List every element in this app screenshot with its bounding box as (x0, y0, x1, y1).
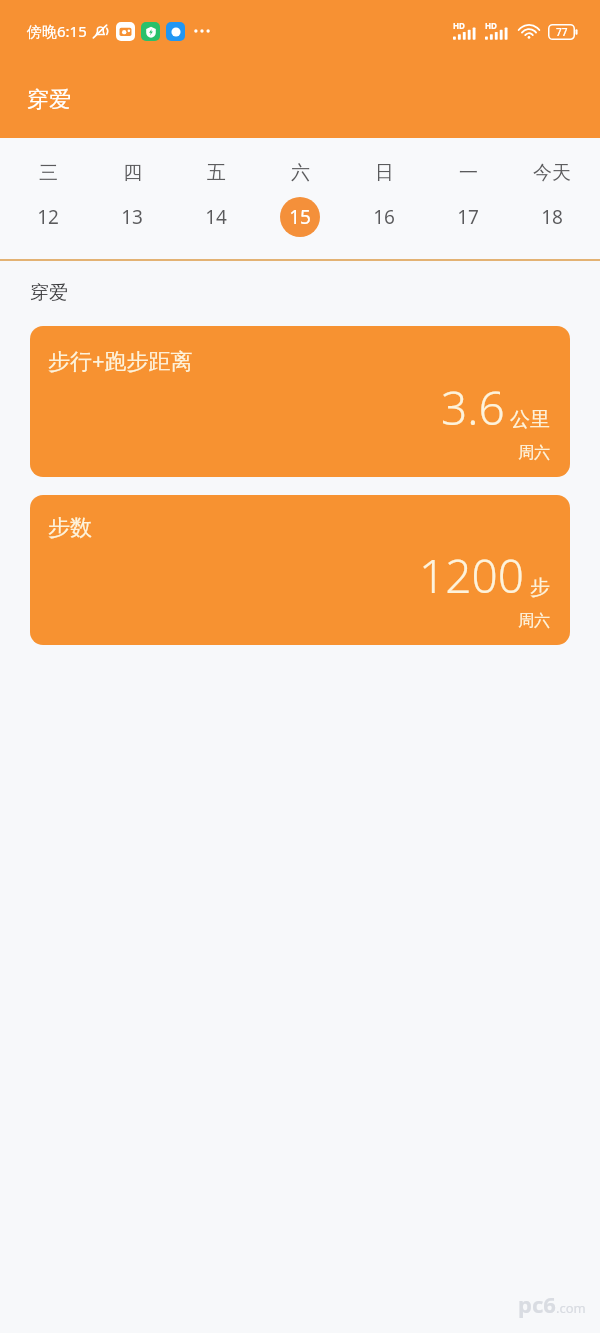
staticText: 步数 (48, 514, 92, 542)
staticText: 13 (121, 204, 143, 230)
button[interactable]: 步数 (30, 495, 570, 645)
staticText: 3.6 (441, 376, 505, 439)
staticText: 六 (291, 161, 310, 185)
button[interactable]: 步行+跑步距离 (30, 326, 570, 477)
staticText: 四 (123, 161, 142, 185)
staticText: 五 (207, 161, 226, 185)
staticText: 18 (541, 204, 563, 230)
staticText: 17 (457, 204, 479, 230)
button[interactable]: 三 (12, 161, 84, 237)
button[interactable]: 五 (180, 161, 252, 237)
staticText: 1200 (419, 544, 525, 607)
staticText: 12 (37, 204, 59, 230)
staticText: 14 (205, 204, 227, 230)
staticText: 步行+跑步距离 (48, 345, 193, 375)
button[interactable]: 日 (348, 161, 420, 237)
staticText: 公里 (510, 407, 550, 432)
staticText: 77 (556, 25, 568, 39)
staticText: 今天 (533, 161, 571, 185)
staticText: 15 (289, 204, 311, 230)
staticText: .com (556, 1299, 586, 1317)
staticText: 16 (373, 204, 395, 230)
staticText: 日 (375, 161, 394, 185)
staticText: 穿爱 (30, 281, 68, 305)
staticText: HD (453, 20, 465, 31)
staticText: 三 (39, 161, 58, 185)
staticText: 一 (459, 161, 478, 185)
staticText: HD (485, 20, 497, 31)
button[interactable]: 四 (96, 161, 168, 237)
staticText: 周六 (518, 443, 550, 463)
button[interactable]: 六 (264, 161, 336, 237)
button[interactable]: 一 (432, 161, 504, 237)
staticText: 傍晚6:15 (27, 21, 87, 41)
staticText: 穿爱 (27, 86, 71, 114)
button[interactable]: 今天 (516, 161, 588, 237)
staticText: 步 (530, 575, 550, 600)
staticText: pc6 (518, 1289, 556, 1319)
staticText: 周六 (518, 611, 550, 631)
